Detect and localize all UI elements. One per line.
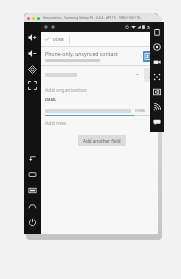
button[interactable]: Clear — [149, 106, 158, 115]
staticText: HOME — [135, 108, 146, 113]
button[interactable]: DONE — [44, 36, 64, 42]
button[interactable]: Sensors — [150, 69, 164, 84]
button[interactable]: Fullscreen — [24, 77, 41, 93]
staticText: Add organization — [45, 86, 87, 93]
staticText: 7:08 — [147, 25, 155, 30]
button[interactable]: Camera — [150, 54, 164, 69]
button[interactable]: Add another field — [78, 135, 126, 146]
button[interactable]: Home — [24, 198, 41, 214]
button[interactable]: Add organization — [41, 83, 158, 96]
button[interactable]: Rotate screen — [24, 61, 41, 77]
button[interactable]: Add photo — [144, 68, 158, 82]
button[interactable]: GPS — [150, 39, 164, 54]
button[interactable]: HOME — [135, 108, 146, 113]
button[interactable]: Power — [24, 214, 41, 230]
staticText: Add another field — [83, 138, 121, 144]
button[interactable]: Back — [24, 150, 41, 166]
button[interactable]: Network — [150, 99, 164, 114]
button[interactable]: Recent apps — [24, 166, 41, 182]
staticText: EMAIL — [45, 97, 57, 102]
button[interactable]: Volume up — [24, 29, 41, 45]
button[interactable]: More options — [145, 33, 157, 45]
button[interactable]: Phone-only, unsynced contact — [41, 47, 158, 65]
button[interactable]: Volume down — [24, 45, 41, 61]
button[interactable]: Add new — [41, 116, 158, 128]
button[interactable]: Messages — [150, 114, 164, 129]
button[interactable]: Battery — [150, 24, 164, 39]
button[interactable]: Menu — [24, 182, 41, 198]
staticText: Genymotion - Samsung Galaxy S5 - 4.4.4 -… — [43, 16, 143, 20]
staticText: Add new — [45, 119, 67, 126]
staticText: Phone-only, unsynced contact — [45, 50, 118, 57]
button[interactable]: Identifiers — [150, 84, 164, 99]
staticText: DONE — [53, 37, 64, 42]
